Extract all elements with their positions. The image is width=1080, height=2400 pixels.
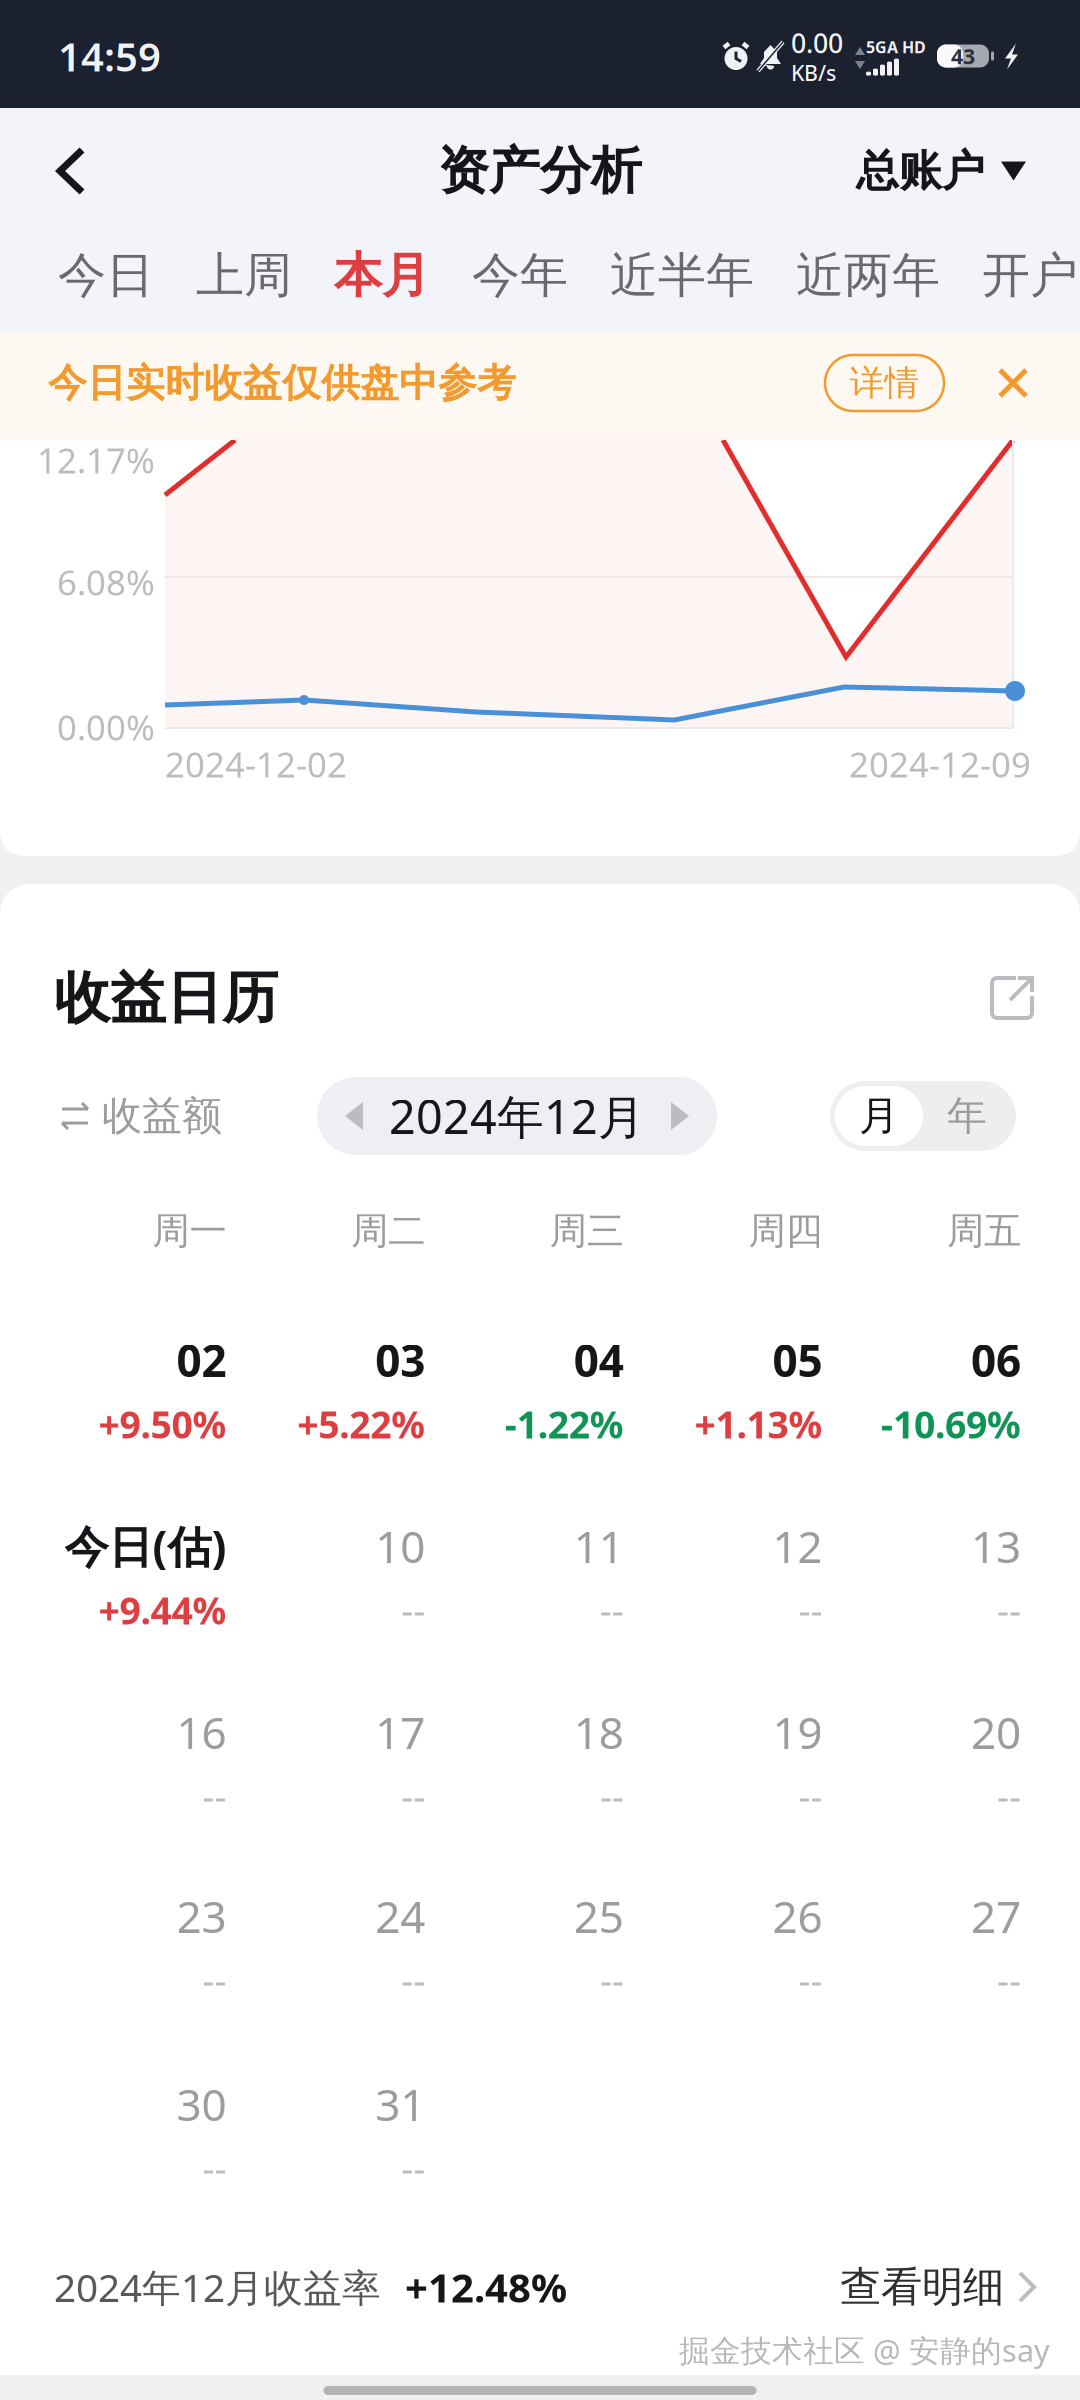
staticText: -1.22% [505,1399,624,1449]
staticText: 今日(估) [65,1517,227,1575]
staticText: 本月 [334,246,430,305]
staticText: KB/s [791,58,836,87]
staticText: -- [600,1585,624,1635]
button[interactable]: Previous month [343,1102,365,1130]
staticText: 30 [177,2075,227,2133]
staticText: 23 [177,1887,227,1945]
staticText: 25 [574,1887,624,1945]
staticText: 02 [177,1331,227,1389]
staticText: 周五 [947,1208,1021,1254]
staticText: -- [997,1585,1021,1635]
staticText: 24 [375,1887,425,1945]
staticText: 近半年 [610,246,754,305]
button[interactable]: 近两年 [796,246,940,305]
staticText: 查看明细 [840,2262,1004,2312]
staticText: 13 [971,1517,1021,1575]
button[interactable]: 今日 [58,246,154,305]
button[interactable]: 查看明细 [840,2262,1036,2312]
staticText: -- [401,2143,425,2193]
staticText: 总账户 [856,145,985,197]
staticText: -- [203,1771,227,1821]
staticText: 上周 [196,246,292,305]
staticText: 周三 [550,1208,624,1254]
staticText: 2024年12月 [389,1085,645,1147]
staticText: -- [798,1955,822,2005]
staticText: 掘金技术社区 @ 安静的say [679,2330,1050,2370]
button[interactable]: 年 [923,1086,1011,1146]
staticText: -- [401,1585,425,1635]
staticText: 03 [375,1331,425,1389]
staticText: 12 [772,1517,822,1575]
button[interactable]: Back [0,142,132,200]
button[interactable]: 详情 [825,355,944,411]
staticText: -10.69% [881,1399,1021,1449]
staticText: 6.08% [57,559,155,605]
button[interactable]: 月 [835,1086,923,1146]
staticText: +1.13% [694,1399,822,1449]
staticText: -- [798,1585,822,1635]
staticText: +12.48% [405,2260,567,2313]
staticText: -- [600,1955,624,2005]
staticText: 26 [772,1887,822,1945]
staticText: 周二 [351,1208,425,1254]
staticText: 2024年12月收益率 [54,2261,381,2313]
staticText: 31 [375,2075,425,2133]
staticText: -- [203,1955,227,2005]
staticText: 12.17% [37,437,155,483]
button[interactable]: Close [998,368,1028,398]
staticText: 14:59 [58,29,161,82]
staticText: 开户以 [982,246,1080,305]
staticText: +5.22% [297,1399,425,1449]
staticText: 04 [574,1331,624,1389]
staticText: 27 [971,1887,1021,1945]
staticText: 5GA [866,36,898,58]
staticText: 11 [574,1517,624,1575]
staticText: 年 [947,1091,987,1140]
staticText: +9.44% [99,1585,227,1635]
staticText: 今日 [58,246,154,305]
staticText: 05 [772,1331,822,1389]
staticText: 18 [574,1703,624,1761]
staticText: HD [902,36,926,58]
staticText: -- [997,1771,1021,1821]
staticText: 近两年 [796,246,940,305]
staticText: 收益额 [102,1091,222,1140]
button[interactable]: 今年 [472,246,568,305]
staticText: 20 [971,1703,1021,1761]
button[interactable]: 近半年 [610,246,754,305]
staticText: 0.00 [791,25,843,60]
staticText: 详情 [849,362,919,404]
staticText: -- [203,2143,227,2193]
staticText: 周四 [748,1208,822,1254]
staticText: 0.00% [57,704,155,750]
staticText: 收益日历 [54,964,278,1032]
staticText: 周一 [153,1208,227,1254]
staticText: +9.50% [99,1399,227,1449]
staticText: 月 [859,1091,899,1140]
staticText: 17 [375,1703,425,1761]
staticText: 今日实时收益仅供盘中参考 [48,359,516,407]
button[interactable]: Expand [988,974,1036,1022]
staticText: 10 [375,1517,425,1575]
staticText: -- [798,1771,822,1821]
button[interactable]: 总账户 [856,139,1080,203]
button[interactable]: 上周 [196,246,292,305]
staticText: 16 [177,1703,227,1761]
staticText: 19 [772,1703,822,1761]
staticText: 2024-12-02 [165,741,347,787]
staticText: -- [401,1771,425,1821]
staticText: 43 [951,42,975,70]
button[interactable]: 本月 [334,246,430,305]
staticText: 资产分析 [438,140,642,202]
staticText: -- [997,1955,1021,2005]
staticText: -- [600,1771,624,1821]
staticText: 06 [971,1331,1021,1389]
staticText: 2024-12-09 [849,741,1031,787]
staticText: 今年 [472,246,568,305]
button[interactable]: Next month [669,1102,691,1130]
staticText: -- [401,1955,425,2005]
button[interactable]: 开户以 [982,246,1080,305]
